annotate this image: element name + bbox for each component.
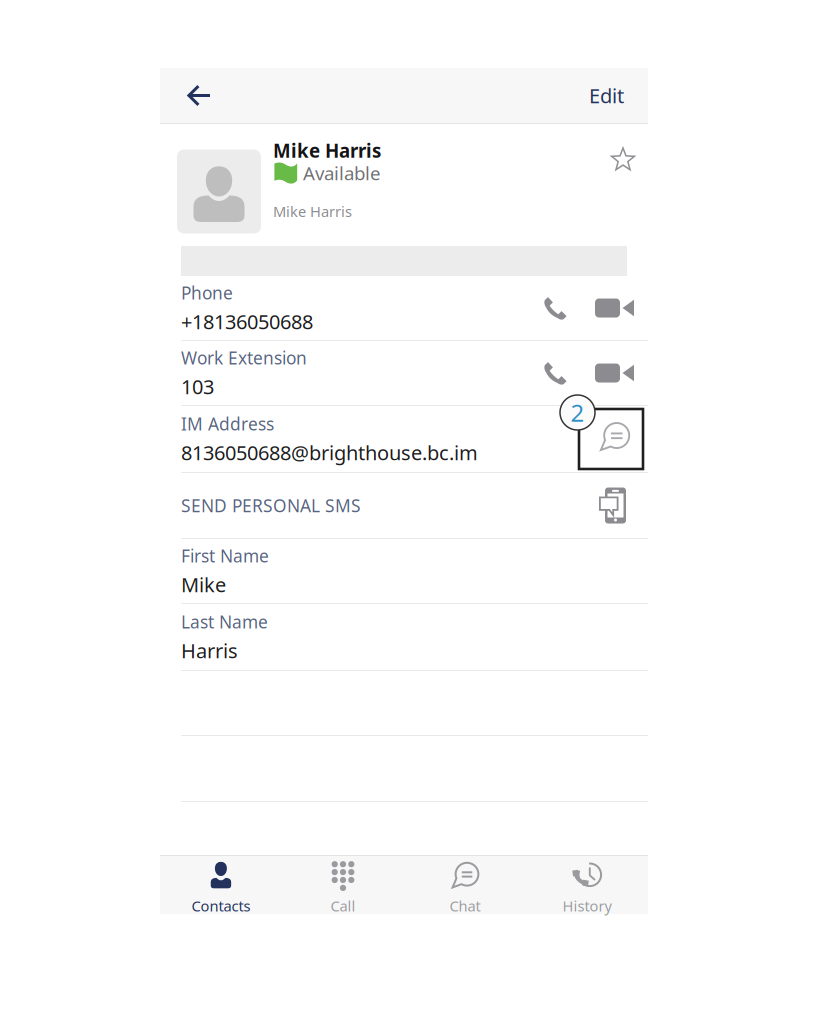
button[interactable]: History [526,856,648,914]
button[interactable]: Edit [589,68,648,123]
staticText: Edit [589,82,624,109]
staticText: +18136050688 [181,308,313,335]
staticText: IM Address [181,412,274,435]
button[interactable]: Work Extension [160,341,648,406]
staticText: History [562,896,611,915]
staticText: Available [303,161,381,185]
staticText: 8136050688@brighthouse.bc.im [181,439,478,466]
staticText: First Name [181,544,269,567]
staticText: Mike Harris [273,138,381,163]
staticText: Phone [181,281,233,304]
staticText: Mike [181,571,226,598]
staticText: 2 [570,397,584,428]
button[interactable]: Favorite [601,138,645,182]
button[interactable]: Contacts [160,856,282,914]
button[interactable]: IM Address [160,406,648,473]
staticText: Last Name [181,610,268,633]
staticText: Harris [181,637,238,664]
button[interactable]: SEND PERSONAL SMS [160,473,648,539]
staticText: Contacts [191,896,250,915]
staticText: Call [330,896,355,915]
button[interactable]: Phone [160,276,648,341]
staticText: Chat [449,896,480,915]
button[interactable]: Back [160,68,222,123]
staticText: SEND PERSONAL SMS [181,494,361,517]
staticText: Mike Harris [273,201,352,221]
staticText: 103 [181,373,214,400]
button[interactable]: Chat [404,856,526,914]
button[interactable]: Call [282,856,404,914]
staticText: Work Extension [181,346,307,369]
